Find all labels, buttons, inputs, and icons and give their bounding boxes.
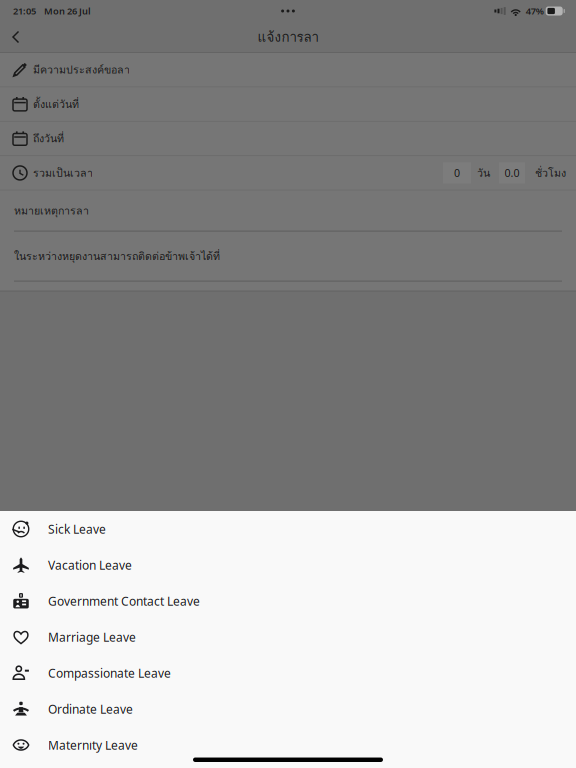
button[interactable]: Ordinate Leave — [0, 691, 576, 727]
staticText: รวมเป็นเวลา — [33, 165, 93, 181]
button[interactable]: Back — [0, 22, 34, 51]
staticText: Maternity Leave — [48, 737, 138, 753]
button[interactable]: หมายเหตุการลา — [0, 191, 576, 232]
staticText: Vacation Leave — [48, 557, 132, 573]
button[interactable]: มีความประสงค์ขอลา — [0, 53, 576, 87]
button[interactable]: ถึงวันที่ — [0, 122, 576, 156]
button[interactable]: Maternity Leave — [0, 727, 576, 763]
staticText: Government Contact Leave — [48, 593, 200, 609]
staticText: Compassionate Leave — [48, 665, 171, 681]
button[interactable]: ในระหว่างหยุดงานสามารถติดต่อข้าพเจ้าได้ท… — [0, 232, 576, 282]
staticText: Sick Leave — [48, 521, 106, 537]
staticText: มีความประสงค์ขอลา — [33, 61, 130, 78]
staticText: ถึงวันที่ — [33, 130, 64, 147]
button[interactable]: รวมเป็นเวลา — [0, 156, 576, 191]
staticText: วัน — [477, 165, 490, 181]
button[interactable]: Government Contact Leave — [0, 583, 576, 619]
staticText: หมายเหตุการลา — [14, 202, 89, 219]
button[interactable]: Sick Leave — [0, 511, 576, 547]
staticText: 21:05 — [13, 5, 36, 17]
staticText: Ordinate Leave — [48, 701, 133, 717]
staticText: ตั้งแต่วันที่ — [33, 96, 79, 112]
button[interactable]: Compassionate Leave — [0, 655, 576, 691]
staticText: 0.0 — [504, 166, 519, 180]
staticText: ในระหว่างหยุดงานสามารถติดต่อข้าพเจ้าได้ท… — [14, 248, 220, 264]
staticText: 0 — [454, 166, 460, 180]
button[interactable]: Marriage Leave — [0, 619, 576, 655]
button[interactable]: Vacation Leave — [0, 547, 576, 583]
staticText: 47% — [526, 5, 544, 17]
staticText: ชั่วโมง — [535, 165, 566, 181]
staticText: Marriage Leave — [48, 629, 136, 645]
button[interactable]: ตั้งแต่วันที่ — [0, 87, 576, 122]
staticText: Mon 26 Jul — [44, 5, 91, 17]
staticText: แจ้งการลา — [257, 27, 318, 47]
